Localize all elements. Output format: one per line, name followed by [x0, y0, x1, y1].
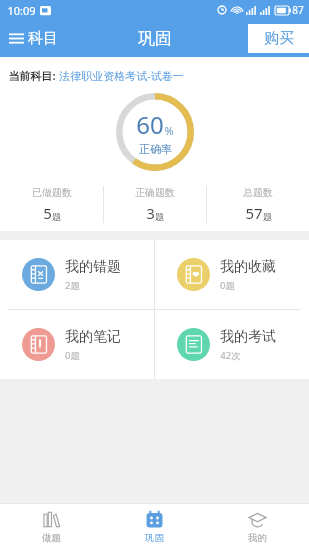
button[interactable]: 我的	[206, 503, 309, 550]
button[interactable]: 我的考试	[155, 310, 309, 379]
staticText: 我的	[248, 532, 267, 544]
staticText: 科目	[28, 29, 58, 48]
staticText: 题	[52, 211, 61, 222]
button[interactable]: 已做题数	[0, 180, 103, 229]
staticText: 42次	[220, 349, 241, 362]
staticText: 总题数	[243, 186, 273, 199]
button[interactable]: 巩固	[103, 503, 206, 550]
button[interactable]: 正确题数	[104, 180, 206, 229]
staticText: 法律职业资格考试-试卷一	[59, 68, 184, 83]
staticText: 0题	[220, 279, 235, 292]
button[interactable]: 我的笔记	[0, 310, 154, 379]
button[interactable]: 做题	[0, 503, 103, 550]
staticText: 题	[155, 211, 164, 222]
button[interactable]: 购买	[248, 24, 309, 53]
staticText: 10:09	[7, 3, 36, 18]
staticText: 当前科目:	[8, 68, 56, 83]
staticText: 3	[146, 203, 155, 223]
button[interactable]: 我的收藏	[155, 240, 309, 309]
staticText: 我的收藏	[220, 258, 276, 276]
staticText: 87	[292, 3, 304, 17]
staticText: 57	[245, 203, 263, 223]
button[interactable]: 我的错题	[0, 240, 154, 309]
staticText: 2题	[65, 279, 80, 292]
staticText: 做题	[42, 532, 61, 544]
staticText: 5	[43, 203, 52, 223]
staticText: 已做题数	[32, 186, 72, 199]
button[interactable]: 总题数	[207, 180, 309, 229]
staticText: 购买	[264, 29, 294, 48]
staticText: 正确率	[139, 142, 172, 156]
staticText: 正确题数	[135, 186, 175, 199]
staticText: 我的笔记	[65, 328, 121, 346]
staticText: 我的考试	[220, 328, 276, 346]
staticText: 题	[263, 211, 272, 222]
button[interactable]: 科目	[0, 25, 66, 52]
staticText: 巩固	[138, 28, 172, 49]
staticText: 0题	[65, 349, 80, 362]
staticText: %	[164, 123, 174, 138]
staticText: 巩固	[145, 532, 164, 544]
staticText: 我的错题	[65, 258, 121, 276]
staticText: 60	[136, 108, 164, 141]
